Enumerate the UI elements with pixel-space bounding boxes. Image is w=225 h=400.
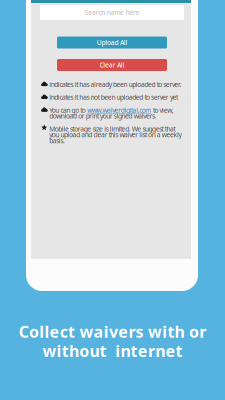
staticText: www.waiverdigital.com — [87, 106, 151, 115]
button[interactable]: Search name here — [40, 5, 184, 20]
staticText: indicates it has already been uploaded t… — [49, 80, 182, 89]
staticText: Upload All — [97, 38, 127, 47]
staticText: without internet — [42, 340, 183, 361]
staticText: Search name here — [84, 8, 140, 17]
staticText: indicates it has not been uploaded to se… — [49, 93, 178, 102]
staticText: download or print your signed waivers. — [49, 112, 156, 120]
button[interactable]: Upload All — [57, 36, 167, 48]
staticText: to view, — [151, 106, 174, 115]
staticText: Collect waivers with or — [19, 321, 206, 342]
staticText: Mobile storage size is limited. We sugge… — [49, 124, 175, 133]
staticText: you upload and clear this waiver list on… — [49, 130, 182, 139]
staticText: You can go to — [49, 106, 87, 115]
staticText: Clear All — [99, 61, 124, 69]
button[interactable]: Clear All — [57, 59, 167, 71]
staticText: basis. — [49, 136, 65, 145]
button[interactable]: www.waiverdigital.com — [87, 106, 151, 115]
